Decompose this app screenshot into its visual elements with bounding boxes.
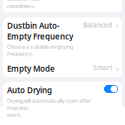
button[interactable]: Dustbin Auto-Empty Frequency: [3, 17, 122, 60]
staticText: Balanced: [83, 20, 112, 29]
staticText: Drying will automatically start after mo…: [7, 97, 91, 118]
button[interactable]: Empty Mode: [3, 60, 122, 77]
staticText: ›: [116, 63, 118, 74]
staticText: Choose a suitable emptying frequency.: [7, 43, 73, 57]
staticText: Empty Mode: [7, 63, 55, 74]
staticText: Auto Drying: [7, 85, 52, 96]
staticText: Select washing intensity based on floor …: [7, 0, 65, 9]
staticText: ›: [116, 20, 118, 31]
staticText: Dustbin Auto-Empty Frequency: [7, 20, 73, 42]
button[interactable]: Cleaning Mode: [3, 0, 122, 12]
staticText: Smart: [93, 63, 112, 72]
button[interactable]: Auto Drying: [3, 82, 122, 121]
